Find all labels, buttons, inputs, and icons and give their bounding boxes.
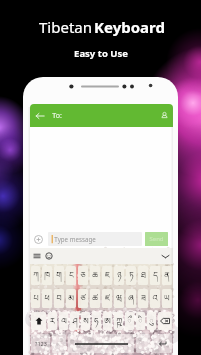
- staticText: ཡ: [164, 289, 170, 308]
- staticText: To:: [52, 111, 62, 121]
- button[interactable]: ཤ: [70, 312, 79, 330]
- staticText: ཤ: [72, 312, 78, 330]
- button[interactable]: ཉ: [114, 266, 124, 285]
- staticText: ྀ: [127, 312, 132, 330]
- staticText: ཞ: [128, 289, 134, 308]
- button[interactable]: ལ: [59, 312, 68, 330]
- staticText: མ: [68, 289, 74, 308]
- button[interactable]: ཝ: [114, 289, 124, 308]
- button[interactable]: Comma: [52, 334, 66, 353]
- staticText: ཟ: [141, 289, 146, 308]
- button[interactable]: Period: [136, 334, 150, 353]
- button[interactable]: ?123: [31, 334, 50, 353]
- button[interactable]: ུ: [147, 312, 156, 330]
- button[interactable]: ར: [48, 312, 57, 330]
- staticText: ཚ: [92, 289, 98, 308]
- staticText: Easy to Use: [74, 47, 128, 60]
- button[interactable]: Backspace: [158, 312, 172, 330]
- staticText: ཀ: [33, 266, 39, 285]
- staticText: ག: [56, 266, 62, 285]
- staticText: ལ: [61, 312, 67, 330]
- staticText: ས: [83, 312, 89, 330]
- button[interactable]: ཀ: [31, 266, 40, 285]
- staticText: ཕ: [44, 289, 50, 308]
- staticText: བ: [56, 289, 62, 308]
- staticText: Tibetan: [37, 17, 94, 37]
- staticText: ཁ: [44, 266, 50, 285]
- button[interactable]: Shift: [31, 312, 46, 330]
- staticText: ཅ: [80, 266, 86, 285]
- button[interactable]: པ: [31, 289, 40, 308]
- button[interactable]: ཨ: [103, 312, 112, 330]
- staticText: ཇ: [105, 266, 110, 285]
- staticText: Type message: [54, 235, 96, 243]
- button[interactable]: Emoji: [45, 252, 53, 260]
- button[interactable]: མ: [66, 289, 76, 308]
- button[interactable]: ཁ: [42, 266, 52, 285]
- staticText: ན: [164, 266, 170, 285]
- staticText: ད: [153, 266, 158, 285]
- button[interactable]: བ: [54, 289, 64, 308]
- button[interactable]: Hide keyboard: [161, 252, 170, 261]
- button[interactable]: ན: [162, 266, 172, 285]
- staticText: Keyboard: [94, 17, 165, 37]
- staticText: ཀྵ: [116, 312, 122, 330]
- button[interactable]: ང: [66, 266, 76, 285]
- button[interactable]: ཙ: [78, 289, 88, 308]
- button[interactable]: ཐ: [138, 266, 148, 285]
- button[interactable]: Back: [35, 111, 45, 121]
- staticText: ཨ: [104, 312, 111, 330]
- button[interactable]: Type message: [48, 232, 142, 246]
- button[interactable]: ད: [150, 266, 160, 285]
- button[interactable]: Space: [68, 334, 134, 353]
- staticText: ?123: [35, 340, 47, 347]
- staticText: ུ: [149, 312, 154, 330]
- button[interactable]: ཡ: [162, 289, 172, 308]
- button[interactable]: འ: [150, 289, 160, 308]
- button[interactable]: ཛ: [102, 289, 112, 308]
- staticText: པ: [33, 289, 39, 308]
- button[interactable]: ཅ: [78, 266, 88, 285]
- button[interactable]: Keyboard settings: [33, 252, 41, 260]
- staticText: ཙ: [80, 289, 86, 308]
- button[interactable]: Enter: [152, 334, 172, 353]
- button[interactable]: ག: [54, 266, 64, 285]
- button[interactable]: ཞ: [126, 289, 136, 308]
- staticText: ཉ: [117, 266, 122, 285]
- button[interactable]: ཚ: [90, 289, 100, 308]
- staticText: ང: [69, 266, 74, 285]
- button[interactable]: ཧ: [92, 312, 101, 330]
- staticText: ཛ: [105, 289, 110, 308]
- button[interactable]: ཕ: [42, 289, 52, 308]
- staticText: ཏ: [129, 266, 134, 285]
- button[interactable]: Contacts: [160, 111, 169, 120]
- button[interactable]: ཀྵ: [114, 312, 123, 330]
- button[interactable]: ཇ: [102, 266, 112, 285]
- staticText: ཆ: [92, 266, 98, 285]
- staticText: ར: [50, 312, 55, 330]
- staticText: ཝ: [116, 289, 122, 308]
- button[interactable]: ཏ: [126, 266, 136, 285]
- staticText: Send: [149, 235, 164, 243]
- button[interactable]: ཟ: [138, 289, 148, 308]
- staticText: ཧ: [94, 312, 99, 330]
- button[interactable]: ས: [81, 312, 90, 330]
- button[interactable]: Send: [145, 232, 168, 246]
- button[interactable]: ྀ: [125, 312, 134, 330]
- button[interactable]: Add attachment: [34, 235, 43, 244]
- button[interactable]: ི: [136, 312, 145, 330]
- staticText: ཐ: [141, 266, 146, 285]
- staticText: འ: [152, 289, 158, 308]
- staticText: ི: [138, 312, 143, 330]
- button[interactable]: ཆ: [90, 266, 100, 285]
